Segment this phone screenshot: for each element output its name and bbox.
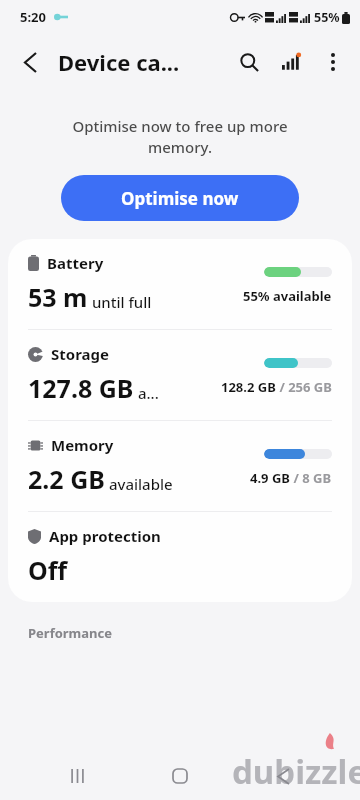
staticText: Off [28, 553, 68, 587]
button[interactable]: App protection [8, 512, 352, 602]
staticText: Optimise now [121, 187, 239, 210]
staticText: dubizzle [232, 749, 360, 794]
staticText: available [105, 474, 173, 494]
button[interactable]: Home [154, 752, 206, 800]
staticText: 127.8 GB [28, 371, 134, 405]
button[interactable]: Back [8, 40, 52, 84]
staticText: / 256 GB [276, 378, 332, 396]
staticText: 55% available [243, 287, 332, 305]
button[interactable]: More options [312, 41, 354, 83]
staticText: Performance [28, 624, 112, 642]
staticText: App protection [49, 526, 161, 546]
button[interactable]: Optimise now [61, 175, 299, 221]
button[interactable]: Memory [8, 421, 352, 511]
staticText: 128.2 GB [221, 378, 276, 396]
button[interactable]: Battery [8, 239, 352, 329]
staticText: Device ca... [58, 47, 180, 77]
button[interactable]: Recents [51, 752, 103, 800]
staticText: Memory [51, 435, 114, 455]
button[interactable]: Usage statistics [270, 41, 312, 83]
button[interactable]: Storage [8, 330, 352, 420]
staticText: 4.9 GB [250, 469, 290, 487]
staticText: 2.2 GB [28, 462, 105, 496]
staticText: a... [134, 383, 159, 403]
staticText: / 8 GB [290, 469, 332, 487]
staticText: Storage [51, 344, 109, 364]
staticText: 53 m [28, 280, 88, 314]
button[interactable]: Search [228, 41, 270, 83]
staticText: Battery [47, 253, 104, 273]
button[interactable]: Back [257, 752, 309, 800]
staticText: Optimise now to free up more memory. [72, 116, 288, 158]
staticText: until full [88, 292, 152, 312]
staticText: 55% [314, 9, 340, 26]
staticText: 5:20 [20, 8, 46, 26]
